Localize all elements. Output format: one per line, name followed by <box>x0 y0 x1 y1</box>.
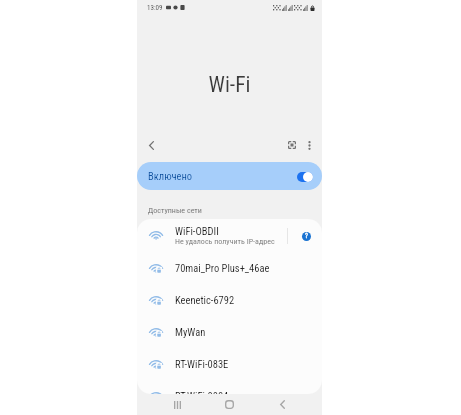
button[interactable]: Scan QR code <box>280 134 303 156</box>
button[interactable]: Back <box>140 134 162 156</box>
button[interactable]: More options <box>298 134 320 156</box>
staticText: WiFi-OBDII <box>175 225 219 237</box>
staticText: Keenetic-6792 <box>175 294 235 306</box>
button[interactable]: Network details <box>299 229 313 243</box>
staticText: ? <box>305 232 308 240</box>
button[interactable]: Home <box>215 394 243 415</box>
staticText: 13:09 <box>147 4 163 12</box>
button[interactable]: Keenetic-6792 <box>137 284 322 316</box>
staticText: Доступные сети <box>148 206 202 215</box>
staticText: Включено <box>148 170 193 182</box>
staticText: RT-WiFi-0084 <box>175 390 229 394</box>
button[interactable]: Recent apps <box>163 394 191 415</box>
button[interactable]: Back <box>268 394 296 415</box>
button[interactable]: RT-WiFi-083E <box>137 348 322 380</box>
staticText: 70mai_Pro Plus+_46ae <box>175 262 270 274</box>
button[interactable]: RT-WiFi-0084 <box>137 380 322 394</box>
staticText: RT-WiFi-083E <box>175 358 229 370</box>
staticText: Wi‑Fi <box>137 72 322 97</box>
button[interactable]: MyWan <box>137 316 322 348</box>
button[interactable]: WiFi-OBDII <box>137 219 322 252</box>
button[interactable]: 70mai_Pro Plus+_46ae <box>137 252 322 284</box>
staticText: MyWan <box>175 326 206 338</box>
staticText: Не удалось получить IP-адрес <box>175 237 275 246</box>
button[interactable]: Включено <box>137 162 322 190</box>
